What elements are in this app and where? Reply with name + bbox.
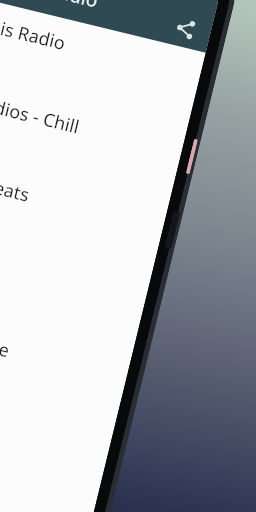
staticText: Radio [45,0,101,13]
staticText: House Beats [0,158,32,208]
button[interactable]: My Radios - Chill [0,51,191,190]
button[interactable]: Jazz Cafe [0,202,154,341]
button[interactable]: Lo-Fi Study [0,429,98,512]
button[interactable]: This is Radio [0,0,209,114]
button[interactable]: Share [161,4,209,52]
button[interactable]: House Beats [0,126,172,266]
staticText: Coffee Lounge [0,310,12,363]
button[interactable]: Deep Night [0,354,117,493]
button[interactable]: Coffee Lounge [0,278,135,417]
staticText: My Radios - Chill [0,82,82,140]
staticText: This is Radio [0,7,68,56]
